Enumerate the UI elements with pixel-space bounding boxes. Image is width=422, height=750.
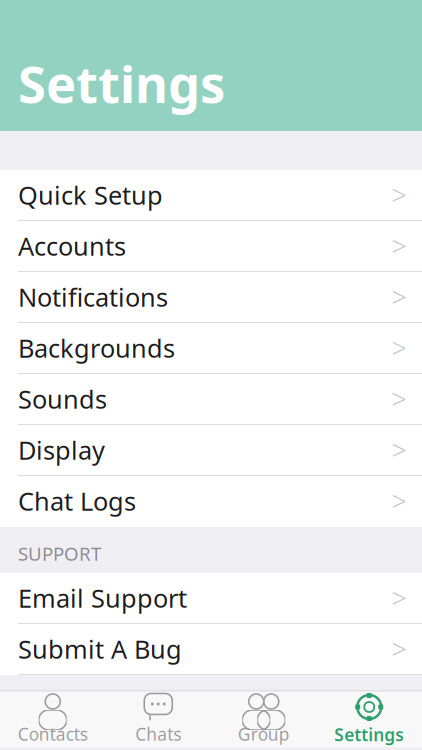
- button[interactable]: Quick Setup: [0, 170, 422, 221]
- staticText: Chat Logs: [18, 484, 136, 518]
- staticText: Quick Setup: [18, 178, 163, 212]
- staticText: Email Support: [18, 581, 187, 615]
- button[interactable]: Settings: [316, 691, 422, 747]
- staticText: >: [391, 483, 406, 519]
- button[interactable]: Accounts: [0, 221, 422, 272]
- button[interactable]: Contacts: [0, 691, 105, 747]
- staticText: >: [391, 381, 406, 417]
- staticText: SUPPORT: [18, 541, 101, 566]
- button[interactable]: Chat Logs: [0, 476, 422, 527]
- staticText: Display: [18, 433, 105, 467]
- staticText: Settings: [334, 723, 404, 746]
- staticText: >: [391, 432, 406, 468]
- staticText: Backgrounds: [18, 331, 175, 365]
- staticText: >: [391, 228, 406, 264]
- button[interactable]: Submit A Bug: [0, 624, 422, 675]
- staticText: Sounds: [18, 382, 107, 416]
- staticText: >: [391, 279, 406, 315]
- staticText: >: [391, 631, 406, 667]
- staticText: Contacts: [18, 722, 88, 745]
- staticText: Group: [238, 722, 290, 745]
- staticText: Submit A Bug: [18, 632, 182, 666]
- button[interactable]: Display: [0, 425, 422, 476]
- staticText: Chats: [135, 722, 181, 745]
- staticText: Settings: [18, 50, 225, 117]
- button[interactable]: Chats: [105, 691, 211, 747]
- button[interactable]: Notifications: [0, 272, 422, 323]
- staticText: >: [391, 177, 406, 213]
- button[interactable]: Backgrounds: [0, 323, 422, 374]
- staticText: >: [391, 330, 406, 366]
- button[interactable]: Email Support: [0, 573, 422, 624]
- staticText: >: [391, 580, 406, 616]
- staticText: Accounts: [18, 229, 126, 263]
- staticText: Notifications: [18, 280, 168, 314]
- button[interactable]: Group: [211, 691, 316, 747]
- button[interactable]: Sounds: [0, 374, 422, 425]
